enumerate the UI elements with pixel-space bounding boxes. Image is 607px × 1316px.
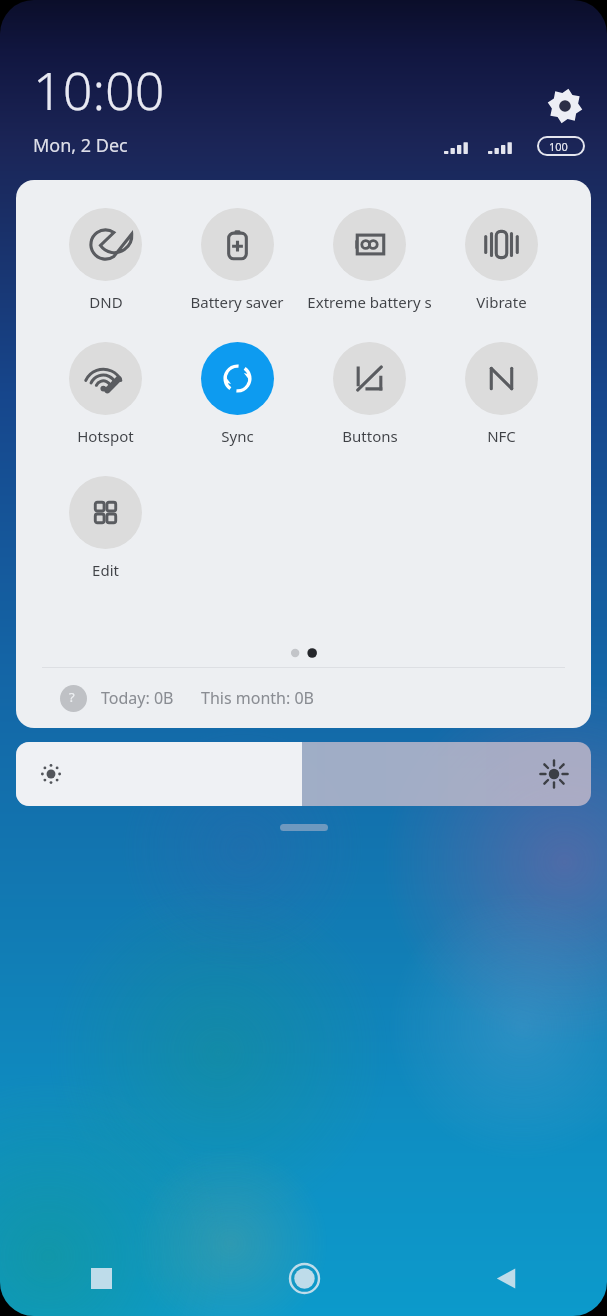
staticText: DND	[89, 292, 123, 312]
staticText: This month: 0B	[201, 687, 314, 709]
button[interactable]: Vibrate	[465, 208, 538, 312]
staticText: Sync	[221, 426, 254, 446]
button[interactable]: DND	[69, 208, 142, 312]
button[interactable]: Brightness	[16, 742, 591, 806]
staticText: Hotspot	[77, 426, 134, 446]
button[interactable]: NFC	[465, 342, 538, 446]
staticText: Mon, 2 Dec	[33, 133, 128, 158]
button[interactable]: Extreme battery s	[307, 208, 432, 312]
staticText: Buttons	[342, 426, 398, 446]
button[interactable]: Sync	[201, 342, 274, 446]
button[interactable]: Home	[203, 1240, 405, 1316]
staticText: 100	[549, 139, 568, 154]
button[interactable]: Settings	[543, 84, 587, 128]
button[interactable]: Buttons	[333, 342, 406, 446]
staticText: Edit	[92, 560, 119, 580]
staticText: Vibrate	[476, 292, 527, 312]
staticText: NFC	[487, 426, 516, 446]
button[interactable]: Hotspot	[69, 342, 142, 446]
staticText: Today: 0B	[101, 687, 174, 709]
staticText: ?	[69, 688, 75, 706]
button[interactable]: Battery saver	[190, 208, 284, 312]
button[interactable]: Back	[405, 1240, 607, 1316]
staticText: 10:00	[33, 54, 165, 125]
staticText: Battery saver	[190, 292, 284, 312]
staticText: Extreme battery s	[307, 292, 432, 312]
button[interactable]: Recents	[0, 1240, 203, 1316]
button[interactable]: Edit	[69, 476, 142, 580]
button[interactable]: ?	[16, 668, 591, 728]
button[interactable]	[280, 824, 328, 831]
